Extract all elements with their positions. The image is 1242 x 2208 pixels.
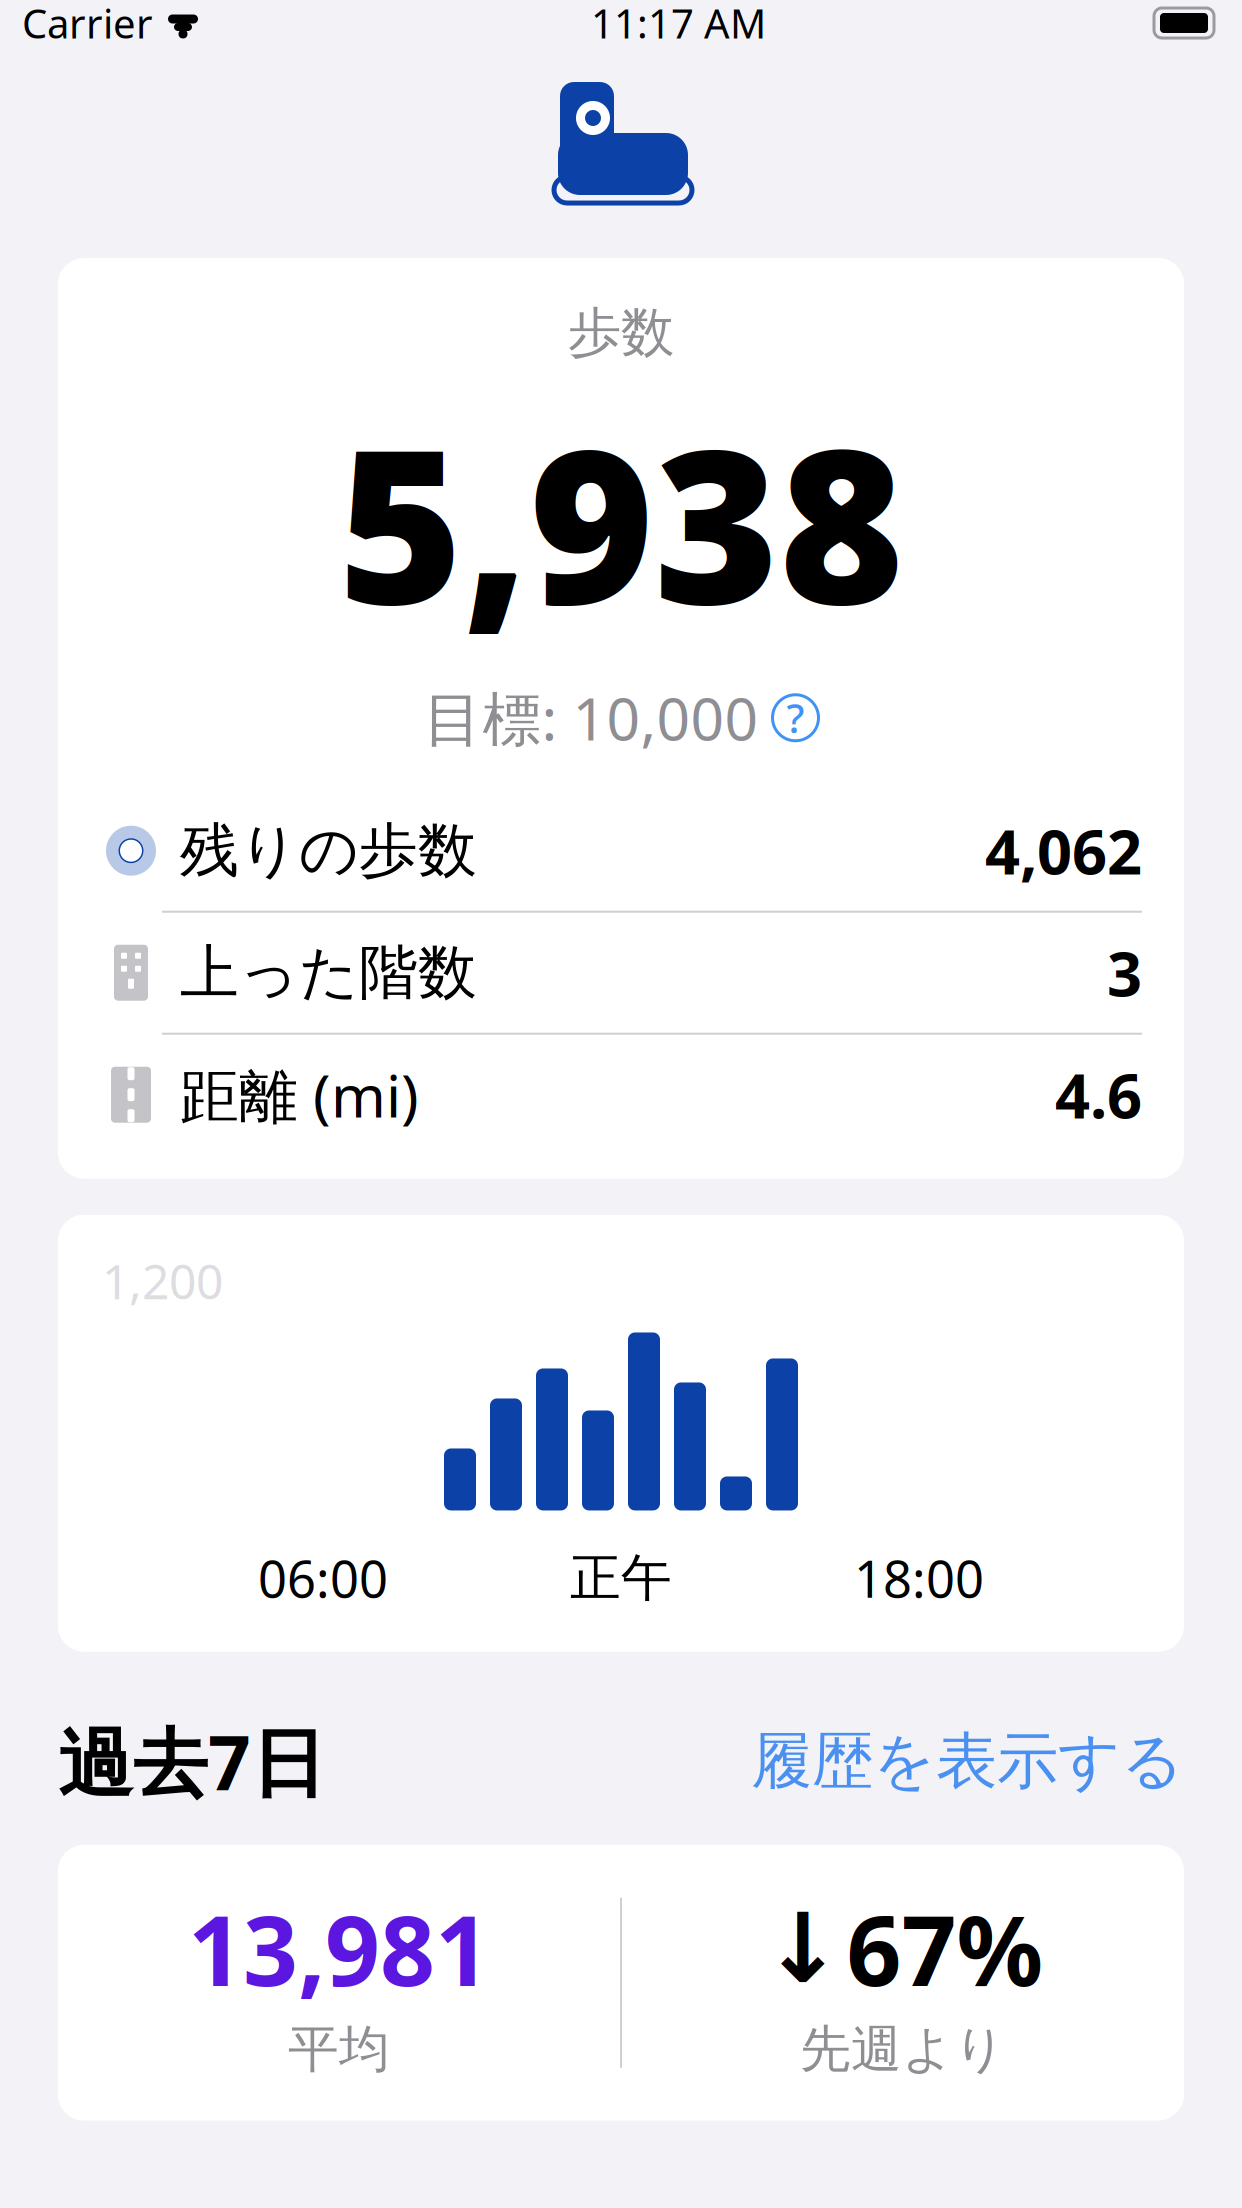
button[interactable]: 上った階数 (58, 913, 1184, 1033)
staticText: 67% (846, 1885, 1043, 2012)
staticText: 18:00 (854, 1544, 984, 1612)
staticText: 履歴を表示する (751, 1724, 1184, 1799)
staticText: 13,981 (188, 1885, 490, 2012)
button[interactable]: 残りの歩数 (58, 791, 1184, 911)
staticText: 目標: 10,000 (423, 679, 758, 757)
staticText: 06:00 (258, 1544, 388, 1612)
staticText: 4,062 (985, 810, 1142, 891)
staticText: 上った階数 (180, 937, 477, 1009)
staticText: 距離 (mi) (180, 1056, 419, 1134)
staticText: ? (786, 691, 804, 744)
button[interactable]: 履歴を表示する (751, 1724, 1184, 1799)
staticText: 平均 (288, 2018, 390, 2081)
staticText: 正午 (570, 1547, 672, 1609)
staticText: 1,200 (102, 1249, 223, 1312)
button[interactable]: 目標: 10,000 (423, 663, 818, 765)
staticText: 残りの歩数 (180, 815, 477, 887)
staticText: 過去7日 (58, 1712, 326, 1811)
button[interactable]: 距離 (mi) (58, 1035, 1184, 1155)
staticText: ↓ (762, 1894, 842, 2003)
staticText: 5,938 (338, 379, 904, 663)
staticText: Carrier (22, 0, 153, 49)
staticText: 先週より (800, 2018, 1006, 2081)
staticText: 4.6 (1055, 1054, 1142, 1135)
staticText: 歩数 (568, 300, 674, 365)
staticText: 3 (1107, 932, 1142, 1013)
staticText: 11:17 AM (591, 0, 766, 49)
